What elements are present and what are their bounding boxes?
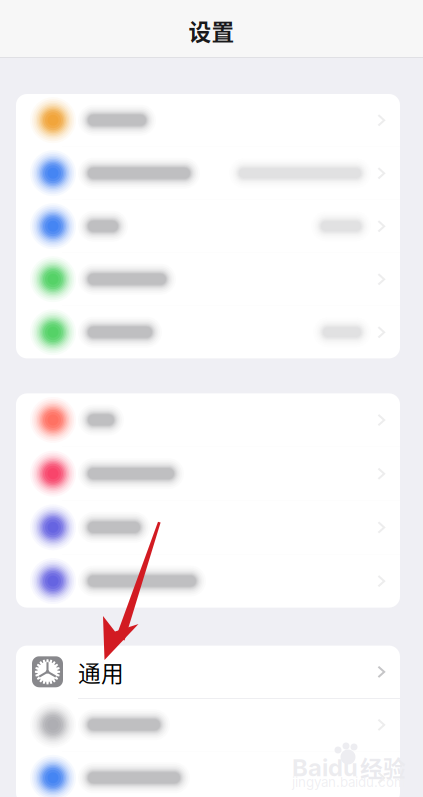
staticText: 设置 — [188, 14, 234, 47]
staticText: jingyan.baidu.com — [292, 774, 406, 790]
staticText: 经验 — [360, 751, 406, 784]
staticText: 通用 — [78, 655, 124, 688]
staticText: Baidu — [292, 753, 358, 782]
button[interactable]: 通用 — [16, 646, 400, 698]
